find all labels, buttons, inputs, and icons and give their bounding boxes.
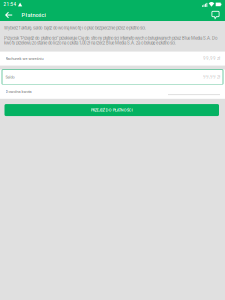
staticText: Rachunek we wrześniu	[5, 56, 43, 61]
button[interactable]: PRZEJDŹ DO PŁATNOŚCI	[4, 104, 219, 116]
button[interactable]: Messages	[209, 9, 222, 21]
staticText: PRZEJDŹ DO PŁATNOŚCI	[91, 108, 133, 112]
staticText: Przycisk "Przejdź do płatności" przekier…	[4, 36, 218, 46]
button[interactable]: Dowolna kwota	[0, 85, 225, 99]
staticText: Dowolna kwota	[5, 89, 31, 94]
button[interactable]: Rachunek we wrześniu	[0, 52, 225, 66]
staticText: Płatności	[21, 12, 45, 18]
staticText: Wybierz fakturę, saldo bądź dowolną kwot…	[4, 25, 146, 31]
staticText: 21:54	[3, 2, 16, 7]
button[interactable]: Back	[2, 9, 15, 21]
staticText: Saldo	[5, 75, 14, 79]
staticText: 99,99 zł	[203, 74, 220, 80]
staticText: 99,99 zł	[203, 56, 220, 61]
button[interactable]: Saldo	[0, 70, 225, 85]
